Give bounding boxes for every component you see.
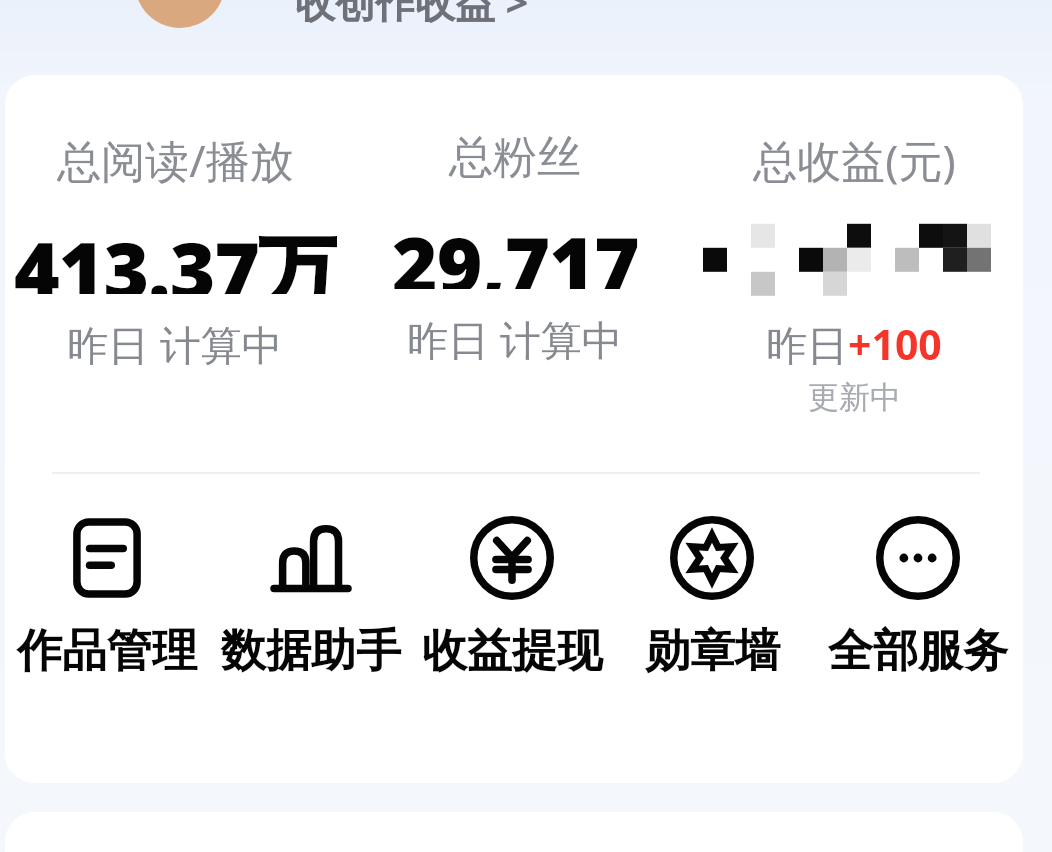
button[interactable]: 数据助手 <box>212 515 410 680</box>
staticText: 全部服务 <box>828 623 1008 680</box>
staticText: 昨日 计算中 <box>67 316 283 372</box>
button[interactable]: 勋章墙 <box>614 515 810 680</box>
staticText: 29,717 <box>392 211 639 289</box>
button[interactable]: 总粉丝 <box>345 130 685 367</box>
staticText: 收创作收益 > <box>295 0 529 29</box>
staticText: 昨日+100 <box>766 316 942 372</box>
staticText: 更新中 <box>808 378 901 417</box>
button[interactable]: Profile avatar <box>135 0 225 28</box>
staticText: 作品管理 <box>17 623 197 680</box>
staticText: 413.37万 <box>14 216 337 294</box>
button[interactable]: 总收益(元) <box>685 130 1023 417</box>
button[interactable]: 作品管理 <box>5 515 209 680</box>
button[interactable]: 全部服务 <box>813 515 1023 680</box>
staticText: 勋章墙 <box>645 623 780 680</box>
button[interactable]: 收益提现 <box>413 515 611 680</box>
button[interactable]: 收创作收益 > <box>295 0 529 29</box>
button[interactable]: 总阅读/播放 <box>5 130 345 372</box>
staticText: 昨日 计算中 <box>407 311 623 367</box>
staticText: 数据助手 <box>221 623 401 680</box>
staticText: 总收益(元) <box>753 130 956 190</box>
staticText: 总阅读/播放 <box>57 130 294 190</box>
staticText: 总粉丝 <box>449 130 581 185</box>
staticText: 收益提现 <box>422 623 602 680</box>
